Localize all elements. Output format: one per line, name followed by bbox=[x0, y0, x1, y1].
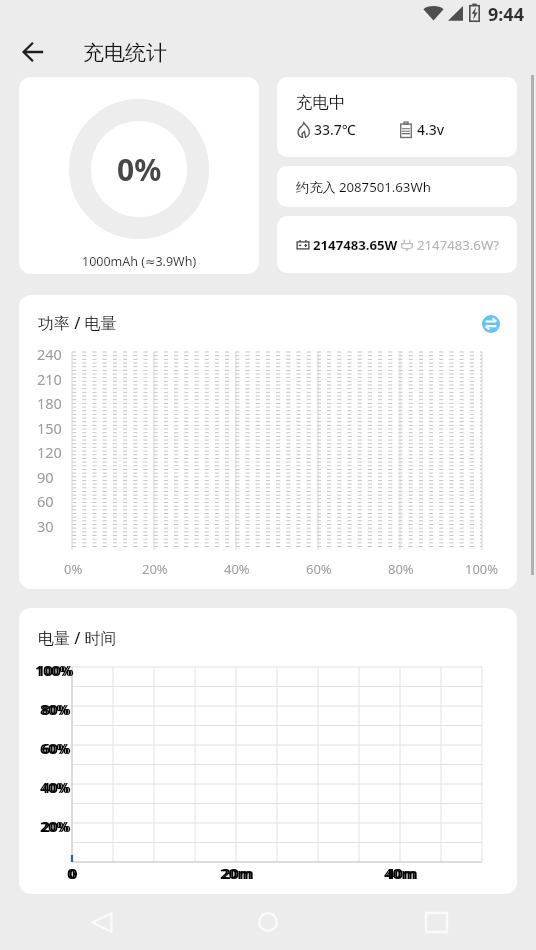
staticText: 80% bbox=[42, 700, 71, 719]
staticText: 210 bbox=[37, 369, 62, 389]
staticText: 电量 / 时间 bbox=[38, 627, 117, 649]
staticText: 180 bbox=[37, 393, 62, 413]
button[interactable]: Swap axes bbox=[480, 313, 502, 335]
staticText: 20% bbox=[142, 560, 168, 578]
staticText: 100% bbox=[465, 560, 499, 578]
staticText: 2147483.65W bbox=[313, 236, 398, 254]
staticText: 60 bbox=[37, 491, 54, 511]
staticText: 功率 / 电量 bbox=[38, 312, 117, 334]
staticText: 0 bbox=[69, 863, 78, 883]
staticText: 充电中 bbox=[296, 92, 346, 113]
staticText: 120 bbox=[37, 442, 62, 462]
staticText: 4.3v bbox=[417, 120, 445, 139]
staticText: 2147483.6W? bbox=[417, 236, 500, 254]
staticText: 30 bbox=[37, 516, 54, 536]
staticText: 40% bbox=[42, 778, 71, 797]
staticText: 240 bbox=[37, 344, 62, 364]
staticText: 40% bbox=[224, 560, 250, 578]
button[interactable]: Recents bbox=[412, 898, 460, 946]
staticText: 20% bbox=[42, 817, 71, 836]
staticText: 60% bbox=[306, 560, 332, 578]
staticText: 90 bbox=[37, 467, 54, 487]
staticText: 20m bbox=[220, 863, 252, 883]
button[interactable]: Back bbox=[78, 898, 126, 946]
staticText: 20% bbox=[40, 817, 69, 836]
staticText: 40m bbox=[386, 863, 418, 883]
staticText: 约充入 2087501.63Wh bbox=[296, 178, 431, 196]
staticText: 80% bbox=[40, 700, 69, 719]
staticText: 20m bbox=[222, 863, 254, 883]
staticText: 33.7℃ bbox=[314, 120, 356, 139]
staticText: 150 bbox=[37, 418, 62, 438]
staticText: 80% bbox=[388, 560, 414, 578]
staticText: 100% bbox=[35, 661, 72, 680]
staticText: 充电统计 bbox=[83, 40, 167, 66]
staticText: 0% bbox=[64, 560, 83, 578]
staticText: 9:44 bbox=[488, 2, 524, 27]
button[interactable]: 充电中 bbox=[277, 77, 517, 157]
button[interactable]: Back bbox=[10, 30, 54, 74]
staticText: 0% bbox=[117, 149, 162, 190]
staticText: 60% bbox=[40, 739, 69, 758]
staticText: 40% bbox=[40, 778, 69, 797]
button[interactable]: 约充入 2087501.63Wh bbox=[277, 166, 517, 207]
button[interactable]: 2147483.65W bbox=[277, 216, 517, 273]
staticText: 60% bbox=[42, 739, 71, 758]
staticText: 1000mAh (≈3.9Wh) bbox=[82, 253, 197, 270]
staticText: 40m bbox=[384, 863, 416, 883]
staticText: 100% bbox=[37, 661, 74, 680]
staticText: 0 bbox=[67, 863, 76, 883]
